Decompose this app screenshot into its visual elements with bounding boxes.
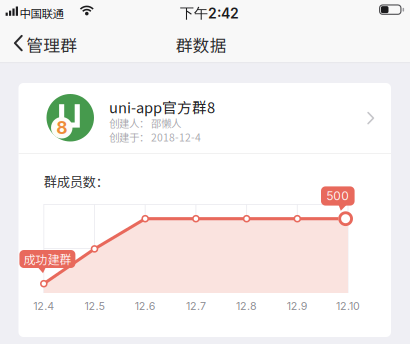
- button[interactable]: 管理群: [0, 26, 82, 60]
- staticText: uni-app官方群8: [109, 96, 215, 117]
- staticText: 成功建群: [23, 250, 71, 268]
- button[interactable]: 8: [18, 83, 391, 153]
- staticText: 12.9: [287, 299, 308, 312]
- staticText: 12.6: [135, 299, 156, 312]
- staticText: 管理群: [26, 32, 77, 56]
- staticText: 8: [56, 117, 67, 138]
- staticText: 12.5: [84, 299, 104, 312]
- staticText: 中国联通: [20, 5, 64, 21]
- staticText: 群成员数：: [44, 172, 109, 191]
- staticText: 创建于： 2018-12-4: [109, 129, 201, 144]
- staticText: 12.8: [236, 299, 257, 312]
- staticText: 下午2:42: [180, 4, 239, 22]
- staticText: 12.7: [186, 299, 206, 312]
- staticText: 12.4: [33, 299, 54, 312]
- staticText: 群数据: [176, 32, 227, 56]
- staticText: 500: [326, 189, 349, 203]
- staticText: 12.10: [336, 299, 360, 312]
- staticText: 创建人： 邵懒人: [109, 115, 181, 130]
